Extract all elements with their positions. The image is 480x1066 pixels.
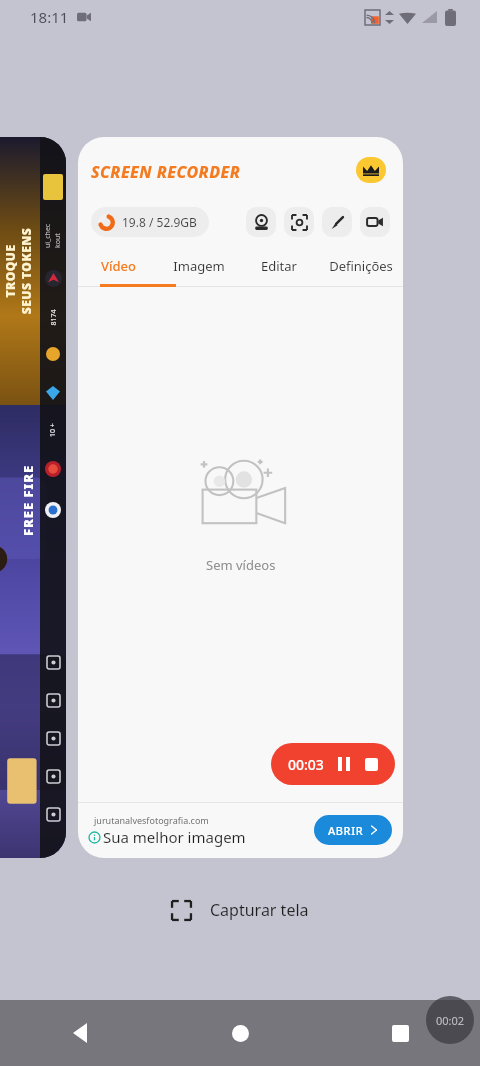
button[interactable]: 00:03 — [288, 743, 378, 785]
staticText: Sem vídeos — [206, 556, 276, 574]
button[interactable]: Premium — [356, 157, 386, 183]
staticText: FREE FIRE — [19, 464, 37, 536]
button[interactable]: Parar — [365, 758, 378, 771]
button[interactable]: Recentes — [320, 1000, 480, 1066]
staticText: Capturar tela — [210, 899, 309, 921]
staticText: 00:02 — [436, 1013, 465, 1028]
staticText: 00:03 — [288, 755, 324, 774]
staticText: jurutanalvesfotografia.com — [94, 814, 209, 826]
button[interactable]: Voltar — [0, 1000, 160, 1066]
button[interactable]: Captura de ecrã — [284, 207, 314, 237]
button[interactable]: Webcam — [246, 207, 276, 237]
staticText: 10 + — [48, 423, 58, 437]
button[interactable]: Temporizador de gravação — [426, 996, 474, 1044]
staticText: Sua melhor imagem — [103, 827, 246, 847]
staticText: ABRIR — [328, 823, 364, 838]
button[interactable]: Pausa — [338, 757, 350, 771]
staticText: ui_checkout — [43, 222, 63, 248]
button[interactable]: Editar — [239, 245, 319, 287]
staticText: 18:11 — [30, 7, 69, 27]
button[interactable]: Imagem — [159, 245, 239, 287]
staticText: 8174 — [48, 308, 58, 325]
button[interactable]: Início — [160, 1000, 320, 1066]
staticText: Vídeo — [101, 257, 136, 275]
staticText: Imagem — [173, 257, 225, 275]
button[interactable]: Definições — [319, 245, 403, 287]
staticText: TROQUE SEUS TOKENS — [1, 227, 33, 314]
button[interactable]: Vídeo — [78, 245, 159, 287]
staticText: 19.8 / 52.9GB — [122, 214, 197, 230]
button[interactable]: Pincel — [322, 207, 352, 237]
button[interactable]: Gravar vídeo — [360, 207, 390, 237]
button[interactable]: 19.8 / 52.9GB — [98, 207, 197, 237]
staticText: Definições — [329, 257, 393, 275]
button[interactable]: ABRIR — [328, 815, 378, 845]
button[interactable]: Capturar tela — [0, 888, 480, 932]
staticText: SCREEN RECORDER — [91, 161, 241, 183]
staticText: Editar — [261, 257, 297, 275]
